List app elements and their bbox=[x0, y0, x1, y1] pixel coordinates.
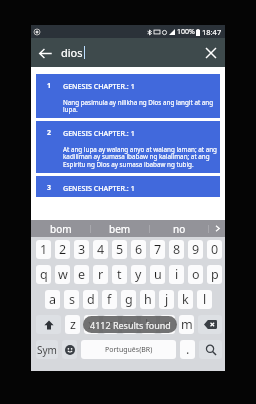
staticText: 2 bbox=[47, 128, 52, 138]
button[interactable]: r bbox=[93, 265, 108, 284]
button[interactable]: Back bbox=[34, 42, 56, 64]
button[interactable]: x bbox=[84, 315, 99, 334]
button[interactable]: b bbox=[141, 315, 156, 334]
button[interactable]: del bbox=[198, 315, 222, 334]
button[interactable]: 8 bbox=[169, 240, 184, 259]
staticText: At ang lupa ay walang anyo at walang lam… bbox=[63, 145, 218, 169]
button[interactable]: Sym bbox=[36, 340, 58, 359]
button[interactable]: w bbox=[55, 265, 70, 284]
button[interactable]: m bbox=[179, 315, 194, 334]
button[interactable]: emoji bbox=[62, 340, 77, 359]
button[interactable]: 5 bbox=[112, 240, 127, 259]
button[interactable]: Clear bbox=[200, 42, 222, 64]
button[interactable]: . bbox=[180, 340, 195, 359]
staticText: f bbox=[107, 291, 112, 308]
button[interactable]: bem bbox=[91, 220, 149, 237]
staticText: 9 bbox=[192, 241, 200, 258]
button[interactable]: q bbox=[36, 265, 51, 284]
staticText: o bbox=[192, 266, 200, 283]
staticText: v bbox=[126, 316, 133, 333]
staticText: e bbox=[78, 266, 86, 283]
staticText: k bbox=[182, 291, 189, 308]
button[interactable]: 2 bbox=[55, 240, 70, 259]
staticText: 0 bbox=[211, 241, 219, 258]
button[interactable]: 4 bbox=[93, 240, 108, 259]
button[interactable]: i bbox=[169, 265, 184, 284]
button[interactable]: 1 bbox=[36, 74, 220, 118]
staticText: no bbox=[173, 222, 186, 236]
staticText: h bbox=[144, 291, 152, 308]
staticText: r bbox=[98, 266, 104, 283]
button[interactable]: Português(BR) bbox=[81, 340, 176, 359]
staticText: p bbox=[211, 266, 219, 283]
staticText: bom bbox=[50, 222, 72, 236]
staticText: b bbox=[145, 316, 153, 333]
button[interactable]: 2 bbox=[36, 121, 220, 173]
staticText: 100% bbox=[177, 27, 195, 37]
staticText: GENESIS CHAPTER.: 1 bbox=[63, 81, 135, 91]
button[interactable]: 3 bbox=[36, 176, 220, 197]
button[interactable]: 6 bbox=[131, 240, 146, 259]
button[interactable]: c bbox=[103, 315, 118, 334]
staticText: j bbox=[165, 291, 169, 308]
staticText: z bbox=[70, 316, 76, 333]
button[interactable]: 0 bbox=[207, 240, 222, 259]
button[interactable]: e bbox=[74, 265, 89, 284]
button[interactable]: s bbox=[64, 290, 79, 309]
staticText: 3 bbox=[78, 241, 86, 258]
button[interactable]: u bbox=[150, 265, 165, 284]
staticText: t bbox=[117, 266, 122, 283]
staticText: x bbox=[88, 316, 95, 333]
button[interactable]: h bbox=[140, 290, 155, 309]
staticText: 5 bbox=[116, 241, 124, 258]
button[interactable]: y bbox=[131, 265, 146, 284]
button[interactable]: z bbox=[65, 315, 80, 334]
staticText: q bbox=[40, 266, 48, 283]
staticText: GENESIS CHAPTER.: 1 bbox=[63, 183, 135, 193]
staticText: l bbox=[203, 291, 207, 308]
staticText: 4112 Results found bbox=[90, 319, 171, 331]
button[interactable]: shift bbox=[36, 315, 61, 334]
staticText: c bbox=[107, 316, 114, 333]
staticText: 1 bbox=[47, 81, 52, 91]
button[interactable]: l bbox=[197, 290, 212, 309]
staticText: . bbox=[186, 341, 190, 358]
staticText: 6 bbox=[135, 241, 143, 258]
button[interactable]: no bbox=[150, 220, 208, 237]
staticText: 1 bbox=[40, 241, 48, 258]
staticText: s bbox=[69, 291, 75, 308]
button[interactable]: f bbox=[102, 290, 117, 309]
button[interactable]: g bbox=[121, 290, 136, 309]
button[interactable]: search bbox=[199, 340, 222, 359]
staticText: y bbox=[135, 266, 142, 283]
staticText: 18:47 bbox=[202, 27, 222, 37]
button[interactable]: o bbox=[188, 265, 203, 284]
button[interactable]: a bbox=[45, 290, 60, 309]
staticText: 2 bbox=[59, 241, 67, 258]
staticText: Nang pasimula ay nilikha ng Dios ang lan… bbox=[63, 98, 218, 114]
button[interactable]: t bbox=[112, 265, 127, 284]
staticText: 8 bbox=[173, 241, 181, 258]
staticText: 3 bbox=[47, 183, 52, 193]
staticText: a bbox=[49, 291, 57, 308]
staticText: GENESIS CHAPTER.: 1 bbox=[63, 128, 135, 138]
staticText: 4 bbox=[97, 241, 105, 258]
staticText: dios bbox=[61, 45, 83, 60]
button[interactable]: 1 bbox=[36, 240, 51, 259]
button[interactable]: 3 bbox=[74, 240, 89, 259]
button[interactable]: d bbox=[83, 290, 98, 309]
staticText: bem bbox=[109, 222, 131, 236]
button[interactable]: bom bbox=[31, 220, 90, 237]
button[interactable]: 9 bbox=[188, 240, 203, 259]
button[interactable]: 7 bbox=[150, 240, 165, 259]
button[interactable]: j bbox=[159, 290, 174, 309]
button[interactable]: p bbox=[207, 265, 222, 284]
button[interactable]: More suggestions bbox=[209, 220, 225, 237]
staticText: n bbox=[164, 316, 172, 333]
staticText: d bbox=[87, 291, 95, 308]
button[interactable]: n bbox=[160, 315, 175, 334]
button[interactable]: v bbox=[122, 315, 137, 334]
button[interactable]: k bbox=[178, 290, 193, 309]
staticText: Português(BR) bbox=[105, 345, 153, 355]
staticText: w bbox=[58, 266, 68, 283]
